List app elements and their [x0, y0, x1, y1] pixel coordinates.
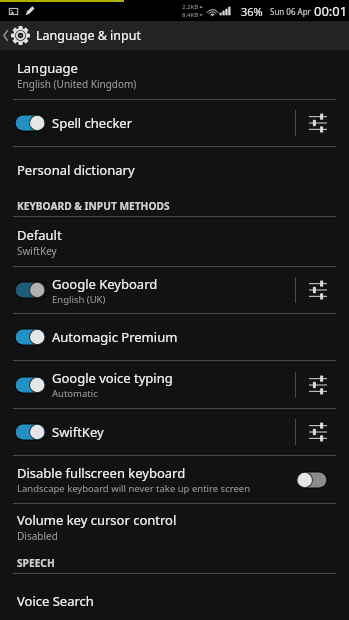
staticText: Google voice typing: [52, 369, 173, 387]
staticText: Personal dictionary: [17, 161, 135, 179]
staticText: Automatic: [52, 387, 98, 400]
staticText: Disabled: [17, 529, 58, 543]
staticText: Volume key cursor control: [17, 511, 177, 529]
staticText: Spell checker: [52, 114, 133, 132]
staticText: 8.4KB: [182, 11, 199, 19]
button[interactable]: SwiftKey: [0, 409, 286, 455]
staticText: English (United Kingdom): [17, 77, 137, 91]
staticText: Landscape keyboard will never take up en…: [17, 482, 251, 495]
button[interactable]: Google voice typing: [0, 361, 286, 408]
button[interactable]: Settings: [296, 100, 349, 146]
staticText: SwiftKey: [52, 423, 104, 441]
staticText: 36%: [241, 4, 263, 19]
staticText: Sun 06 Apr: [270, 6, 311, 17]
staticText: English (UK): [52, 293, 106, 306]
button[interactable]: Disable fullscreen keyboard: [0, 456, 349, 503]
staticText: SPEECH: [17, 556, 55, 570]
button[interactable]: Settings: [296, 361, 349, 408]
button[interactable]: Personal dictionary: [0, 147, 349, 192]
staticText: Default: [17, 226, 62, 244]
button[interactable]: Automagic Premium: [0, 314, 337, 360]
staticText: 2.2KB: [182, 3, 199, 11]
button[interactable]: Default: [0, 217, 349, 266]
staticText: SwiftKey: [17, 244, 57, 258]
other: Back: [2, 29, 9, 42]
button[interactable]: Spell checker: [0, 100, 286, 146]
button[interactable]: Settings: [296, 267, 349, 313]
button[interactable]: Google Keyboard: [0, 267, 286, 313]
staticText: Voice Search: [17, 592, 94, 610]
button[interactable]: Settings: [296, 409, 349, 455]
staticText: Language: [17, 59, 78, 77]
staticText: Language & input: [36, 27, 141, 44]
button[interactable]: Language: [0, 50, 349, 99]
staticText: 00:01: [314, 2, 348, 20]
staticText: KEYBOARD & INPUT METHODS: [17, 199, 170, 213]
staticText: Automagic Premium: [52, 328, 178, 346]
button[interactable]: Voice Search: [0, 574, 349, 620]
button[interactable]: Back: [0, 21, 349, 50]
staticText: Disable fullscreen keyboard: [17, 464, 186, 482]
button[interactable]: Volume key cursor control: [0, 504, 349, 549]
staticText: Google Keyboard: [52, 275, 158, 293]
